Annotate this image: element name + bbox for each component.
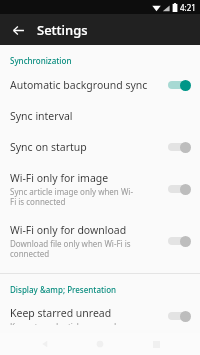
button[interactable]: Wi-Fi only for download [0, 215, 200, 267]
staticText: Wi-Fi only for download [10, 223, 127, 237]
staticText: Automatic background sync [10, 78, 148, 92]
button[interactable]: Off [166, 233, 192, 249]
staticText: Wi-Fi only for image [10, 171, 109, 185]
button[interactable]: Off [166, 308, 192, 324]
button[interactable]: Recent apps [145, 333, 167, 355]
staticText: Sync interval [10, 109, 73, 123]
staticText: Display &amp; Presentation [10, 284, 117, 295]
staticText: Settings [37, 21, 88, 39]
staticText: Sync article image only when Wi-Fi is co… [10, 186, 133, 207]
button[interactable]: Back [5, 17, 31, 43]
button[interactable]: Sync interval [0, 101, 200, 131]
button[interactable]: Wi-Fi only for image [0, 163, 200, 215]
staticText: Keep starred unread [10, 306, 112, 320]
staticText: Keep starred articles unread [10, 321, 133, 325]
button[interactable]: Off [166, 139, 192, 155]
staticText: Synchronization [10, 55, 72, 66]
staticText: Sync on startup [10, 140, 87, 154]
button[interactable]: Automatic background sync [0, 69, 200, 101]
button[interactable]: Keep starred unread [0, 298, 200, 333]
button[interactable]: Sync on startup [0, 131, 200, 163]
staticText: Download file only when Wi-Fi is connect… [10, 238, 133, 259]
button[interactable]: On [166, 77, 192, 93]
staticText: 4:21 [180, 2, 196, 13]
button[interactable]: Off [166, 181, 192, 197]
